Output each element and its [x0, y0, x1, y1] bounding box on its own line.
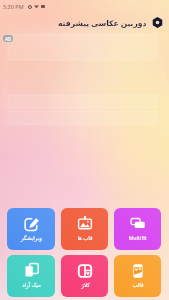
staticText: دوربین عکاسی پیشرفته [58, 18, 147, 28]
button[interactable]: قاب ها [61, 208, 108, 250]
staticText: میک آزاد [22, 281, 41, 288]
staticText: ویرایشگر [21, 235, 42, 241]
staticText: AD [5, 36, 12, 42]
staticText: قاب ها [77, 234, 93, 241]
staticText: Multifit [128, 234, 147, 241]
button[interactable]: قالب [114, 255, 161, 297]
staticText: کلاژ [81, 282, 90, 288]
button[interactable]: کلاژ [61, 255, 108, 297]
staticText: 5:30 PM [3, 3, 24, 10]
button[interactable]: ویرایشگر [7, 208, 55, 250]
button[interactable]: Settings [151, 16, 164, 29]
button[interactable]: Multifit [114, 208, 161, 250]
button[interactable]: میک آزاد [7, 255, 55, 297]
staticText: قالب [132, 282, 144, 288]
